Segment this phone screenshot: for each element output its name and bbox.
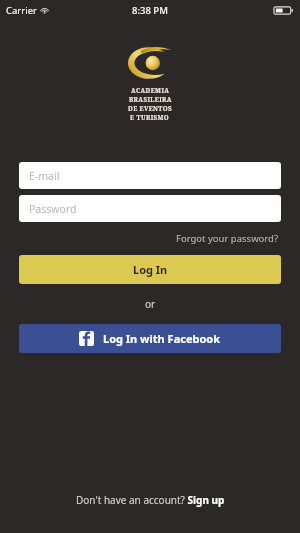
button[interactable]: Log In	[19, 255, 281, 284]
button[interactable]: E-mail	[19, 162, 281, 189]
staticText: ACADEMIA	[131, 86, 170, 94]
staticText: Forgot your password?	[176, 232, 279, 245]
staticText: Log In	[133, 262, 168, 277]
staticText: 8:38 PM	[132, 4, 168, 17]
staticText: E TURISMO	[130, 113, 170, 121]
staticText: DE EVENTOS	[128, 104, 172, 112]
button[interactable]: Forgot your password?	[174, 230, 281, 247]
staticText: BRASILEIRA	[129, 95, 172, 103]
staticText: Carrier	[6, 4, 37, 17]
staticText: E-mail	[29, 169, 60, 183]
button[interactable]: Don't have an account? Sign up	[0, 489, 300, 511]
button[interactable]: Log In with Facebook	[19, 324, 281, 353]
staticText: Log In with Facebook	[103, 331, 221, 346]
staticText: Password	[29, 202, 77, 216]
staticText: or	[145, 297, 156, 311]
button[interactable]: Password	[19, 195, 281, 222]
staticText: Don't have an account? Sign up	[76, 493, 225, 507]
